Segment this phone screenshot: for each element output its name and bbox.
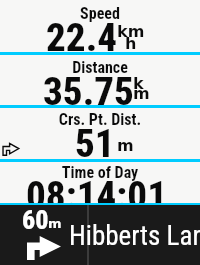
staticText: Time of Day [0,163,200,182]
staticText: 08:14:01 [26,173,167,214]
staticText: 60 [22,205,49,235]
button[interactable]: Speed [0,0,200,51]
button[interactable]: 60 [0,205,87,265]
staticText: 51 [75,121,115,167]
staticText: Crs. Pt. Dist. [0,110,200,129]
other: Turn right [2,138,20,156]
staticText: h [125,34,137,53]
staticText: k [133,74,144,93]
staticText: Distance [0,58,200,77]
staticText: m [48,216,62,231]
staticText: km [117,22,145,41]
staticText: 22.4 [46,15,118,61]
button[interactable]: Hibberts Lane [89,205,200,265]
staticText: Speed [0,4,200,23]
other: Turn right [27,236,61,260]
button[interactable]: Time of Day [0,159,200,200]
staticText: Hibberts Lane [69,220,200,252]
staticText: 35.75 [43,69,134,115]
staticText: m [117,136,134,155]
staticText: m [133,84,150,103]
button[interactable]: Crs. Pt. Dist. [0,106,200,157]
button[interactable]: Distance [0,54,200,105]
